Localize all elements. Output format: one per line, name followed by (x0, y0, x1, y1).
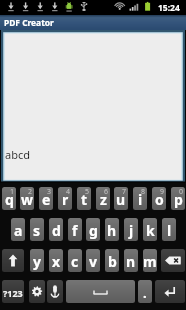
button[interactable]: abcd (0, 30, 186, 183)
button[interactable]: Settings (29, 280, 45, 303)
staticText: 15:24 (158, 2, 180, 14)
staticText: n (126, 252, 136, 271)
staticText: s (33, 221, 41, 240)
staticText: 4 (66, 187, 71, 197)
staticText: d (52, 221, 61, 240)
staticText: 2 (28, 187, 33, 197)
staticText: g (89, 221, 98, 240)
staticText: i (138, 190, 143, 209)
staticText: a (14, 221, 23, 240)
button[interactable]: . (138, 280, 152, 303)
staticText: f (72, 221, 78, 240)
staticText: PDF Creator (4, 17, 54, 28)
button[interactable]: a (11, 218, 25, 241)
staticText: b (108, 252, 117, 271)
button[interactable]: Enter (155, 280, 185, 303)
staticText: j (129, 221, 134, 240)
staticText: . (143, 284, 147, 302)
button[interactable]: Backspace (161, 249, 185, 272)
button[interactable]: t (77, 187, 91, 210)
button[interactable]: j (124, 218, 138, 241)
button[interactable]: Voice input (47, 280, 63, 303)
staticText: 9 (160, 187, 165, 197)
staticText: v (89, 252, 97, 271)
staticText: y (33, 252, 41, 271)
button[interactable]: f (68, 218, 82, 241)
staticText: k (146, 221, 155, 240)
button[interactable]: w (20, 187, 34, 210)
staticText: 1 (10, 187, 15, 197)
button[interactable]: p (171, 187, 185, 210)
button[interactable]: x (49, 249, 63, 272)
button[interactable]: c (68, 249, 82, 272)
staticText: e (42, 190, 51, 209)
button[interactable]: k (143, 218, 157, 241)
staticText: w (21, 190, 33, 209)
staticText: h (107, 221, 117, 240)
button[interactable]: b (105, 249, 119, 272)
staticText: t (81, 190, 88, 209)
button[interactable]: r (58, 187, 72, 210)
button[interactable]: m (143, 249, 157, 272)
button[interactable]: Space (66, 280, 135, 303)
button[interactable]: q (2, 187, 16, 210)
staticText: c (71, 252, 79, 271)
staticText: 8 (141, 187, 146, 197)
staticText: o (155, 190, 164, 209)
button[interactable]: s (30, 218, 44, 241)
staticText: 7 (122, 187, 127, 197)
staticText: abcd (5, 147, 30, 162)
staticText: 6 (104, 187, 109, 197)
button[interactable]: i (133, 187, 147, 210)
staticText: ?123 (3, 287, 23, 299)
button[interactable]: h (105, 218, 119, 241)
staticText: 5 (85, 187, 90, 197)
staticText: q (5, 190, 14, 209)
button[interactable]: v (86, 249, 100, 272)
button[interactable]: l (162, 218, 176, 241)
staticText: z (100, 190, 107, 209)
button[interactable]: y (30, 249, 44, 272)
button[interactable]: Shift (2, 249, 24, 272)
staticText: x (52, 252, 61, 271)
button[interactable]: z (96, 187, 110, 210)
button[interactable]: u (114, 187, 128, 210)
staticText: 3 (47, 187, 52, 197)
staticText: m (143, 252, 157, 271)
staticText: p (174, 190, 183, 209)
staticText: 0 (179, 187, 184, 197)
button[interactable]: e (39, 187, 53, 210)
staticText: r (62, 190, 69, 209)
button[interactable]: ?123 (2, 280, 24, 303)
button[interactable]: n (124, 249, 138, 272)
staticText: u (116, 190, 126, 209)
button[interactable]: d (49, 218, 63, 241)
staticText: l (167, 221, 172, 240)
button[interactable]: o (152, 187, 166, 210)
button[interactable]: g (86, 218, 100, 241)
